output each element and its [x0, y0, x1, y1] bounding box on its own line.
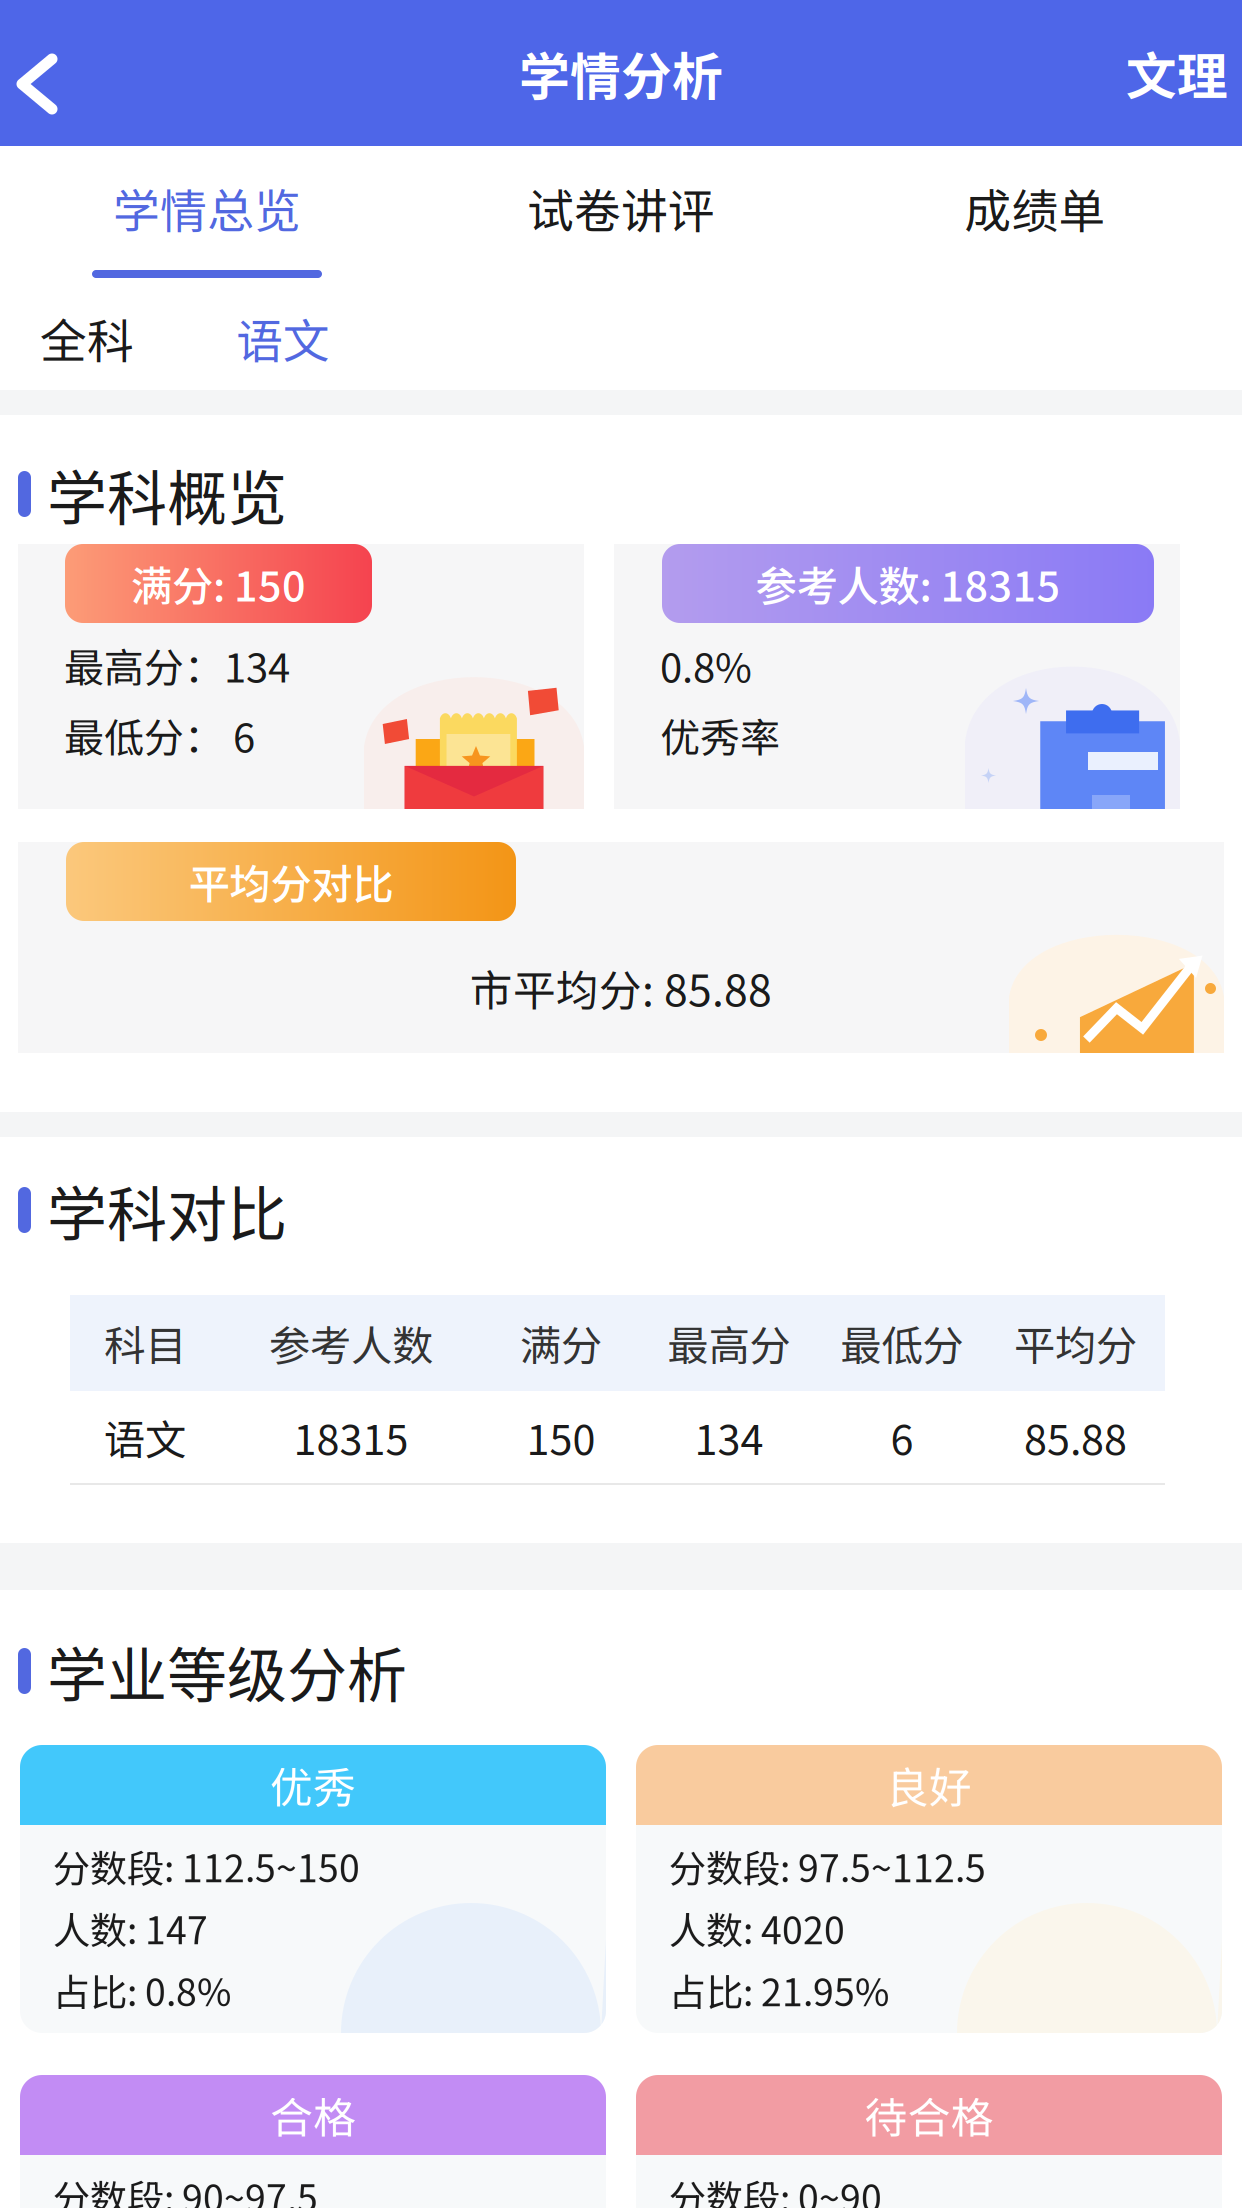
staticText: 待合格	[864, 2084, 993, 2146]
staticText: 85.88	[1024, 1407, 1127, 1467]
staticText: 分数段: 97.5~112.5	[669, 1839, 986, 1893]
staticText: 最高分：134	[64, 636, 290, 694]
button[interactable]: 全科	[0, 286, 236, 390]
staticText: 满分	[520, 1313, 602, 1373]
staticText: 150	[526, 1407, 595, 1467]
staticText: 0.8%	[660, 636, 752, 694]
button[interactable]: Back	[0, 0, 116, 146]
staticText: 学业等级分析	[47, 1628, 407, 1714]
staticText: 平均分对比	[188, 852, 393, 911]
staticText: 语文	[236, 304, 330, 372]
button[interactable]: 学情总览	[0, 146, 414, 286]
staticText: 成绩单	[964, 174, 1105, 242]
staticText: 学情分析	[519, 36, 723, 110]
staticText: 优秀率	[660, 706, 780, 764]
staticText: 参考人数: 18315	[755, 554, 1060, 613]
staticText: 分数段: 90~97.5	[53, 2169, 318, 2208]
staticText: 18315	[293, 1407, 408, 1467]
staticText: 科目	[104, 1313, 186, 1373]
staticText: 分数段: 0~90	[669, 2169, 882, 2208]
button[interactable]: 语文	[236, 286, 432, 390]
staticText: 人数: 4020	[669, 1901, 845, 1955]
staticText: 6	[890, 1407, 913, 1467]
staticText: 市平均分: 85.88	[470, 957, 772, 1019]
staticText: 优秀	[270, 1754, 356, 1816]
staticText: 134	[694, 1407, 763, 1467]
staticText: 良好	[886, 1754, 972, 1816]
button[interactable]: 成绩单	[828, 146, 1242, 286]
staticText: 占比: 21.95%	[669, 1963, 889, 2017]
staticText: 最高分	[667, 1313, 790, 1373]
staticText: 占比: 0.8%	[53, 1963, 231, 2017]
staticText: 全科	[40, 304, 134, 372]
staticText: 人数: 147	[53, 1901, 208, 1955]
staticText: 学科对比	[47, 1167, 287, 1253]
staticText: 学情总览	[113, 174, 301, 242]
staticText: 平均分	[1014, 1313, 1137, 1373]
button[interactable]: 试卷讲评	[414, 146, 828, 286]
button[interactable]: 文理	[1126, 0, 1242, 146]
staticText: 满分: 150	[131, 554, 306, 613]
staticText: 参考人数	[269, 1313, 433, 1373]
staticText: 最低分： 6	[64, 706, 255, 764]
staticText: 学科概览	[47, 451, 287, 537]
staticText: 分数段: 112.5~150	[53, 1839, 360, 1893]
staticText: 最低分	[840, 1313, 963, 1373]
staticText: 语文	[104, 1407, 186, 1467]
staticText: 文理	[1126, 36, 1228, 110]
staticText: 合格	[270, 2084, 356, 2146]
staticText: 试卷讲评	[527, 174, 715, 242]
